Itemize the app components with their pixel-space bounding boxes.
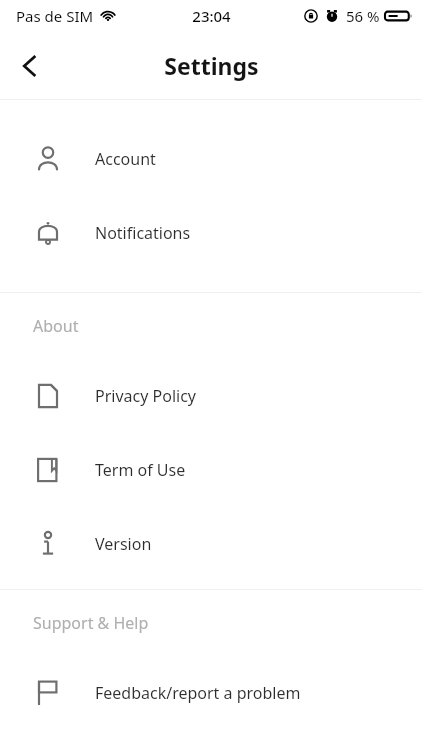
button[interactable]: Notifications [0, 196, 422, 270]
button[interactable]: Version [0, 507, 422, 581]
staticText: Settings [164, 50, 259, 81]
staticText: Pas de SIM [16, 6, 94, 26]
staticText: 23:04 [192, 6, 231, 26]
button[interactable]: Feedback/report a problem [0, 656, 422, 730]
button[interactable]: Privacy Policy [0, 359, 422, 433]
button[interactable]: Back [6, 42, 54, 90]
staticText: Notifications [95, 222, 191, 244]
staticText: Feedback/report a problem [95, 682, 301, 704]
staticText: Term of Use [95, 459, 186, 481]
staticText: About [33, 315, 79, 337]
button[interactable]: Account [0, 122, 422, 196]
staticText: Support & Help [33, 612, 149, 634]
staticText: Version [95, 533, 152, 555]
staticText: Account [95, 148, 156, 170]
button[interactable]: Term of Use [0, 433, 422, 507]
staticText: 56 % [346, 6, 380, 26]
staticText: Privacy Policy [95, 385, 196, 407]
